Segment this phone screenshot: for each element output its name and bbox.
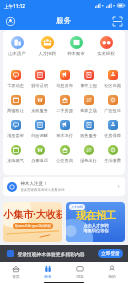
button[interactable]: 服务	[32, 262, 64, 281]
button[interactable]: 立即登录	[98, 249, 123, 258]
button[interactable]: 政务服务	[77, 120, 100, 145]
staticText: 登录恒晓神木体验更多精彩内容	[17, 251, 85, 257]
staticText: 政务服务	[80, 133, 97, 138]
button[interactable]: 水电燃气	[4, 145, 27, 170]
staticText: 事件上报	[80, 83, 97, 88]
staticText: 社区见闻	[104, 83, 121, 88]
button[interactable]: 永政服务	[28, 95, 51, 120]
button[interactable]: 清景委审	[4, 120, 27, 145]
staticText: 神木支付	[56, 133, 73, 138]
staticText: 永政服务	[31, 108, 48, 113]
staticText: 水电燃气	[7, 158, 24, 163]
button[interactable]: 神木支付	[53, 120, 76, 145]
button[interactable]: 办事电话	[28, 145, 51, 170]
button[interactable]: 首页	[0, 262, 32, 281]
button[interactable]: 绿色出行	[77, 145, 100, 170]
button[interactable]: 财信证明	[28, 70, 51, 95]
button[interactable]: 信息发布	[53, 70, 76, 95]
staticText: 信息发布	[56, 83, 73, 88]
button[interactable]: 事件上报	[77, 70, 100, 95]
staticText: 上午11:12	[4, 3, 25, 9]
staticText: 更多国家政策请进入查看详情	[20, 188, 65, 192]
button[interactable]: 山木房产	[4, 36, 30, 57]
button[interactable]: 人才招聘	[34, 36, 60, 57]
button[interactable]: 种木聚市	[63, 36, 89, 57]
staticText: 办事电话	[31, 158, 48, 163]
staticText: 换家之场	[80, 108, 97, 113]
button[interactable]: 生活缴费	[101, 145, 124, 170]
staticText: 人才招聘	[71, 205, 83, 209]
staticText: 住房保障	[104, 133, 121, 138]
button[interactable]: 换家之场	[77, 95, 100, 120]
staticText: 立即登录	[101, 251, 120, 257]
staticText: 点击人才招聘	[83, 223, 109, 228]
staticText: 服务	[56, 16, 71, 25]
button[interactable]: 广告投放	[101, 95, 124, 120]
button[interactable]: 社区见闻	[101, 70, 124, 95]
button[interactable]: 实名授权	[93, 36, 119, 57]
staticText: 小集市·大收获！	[3, 207, 62, 221]
staticText: 七置动态	[7, 83, 24, 88]
button[interactable]: 小集市·大收获！	[3, 202, 62, 242]
staticText: 服务	[44, 274, 52, 279]
staticText: 神木人注意！	[20, 181, 48, 187]
button[interactable]: 人才招聘	[66, 202, 125, 242]
staticText: 公交查询	[56, 158, 73, 163]
button[interactable]: Profile	[4, 15, 16, 27]
staticText: 绿色出行	[80, 158, 97, 163]
staticText: 二手房源	[56, 108, 73, 113]
button[interactable]: 七置动态	[4, 70, 27, 95]
staticText: 现在招工	[76, 209, 116, 222]
button[interactable]: 公交查询	[53, 145, 76, 170]
button[interactable]: Scan QR code	[111, 15, 123, 27]
staticText: 清景委审	[7, 133, 24, 138]
staticText: 商铺租让	[7, 108, 24, 113]
staticText: 生活缴费	[104, 158, 121, 163]
button[interactable]: 我的	[96, 262, 128, 281]
staticText: 我的	[108, 274, 116, 279]
staticText: 吃喝玩乐购·遇见花式精彩	[15, 224, 51, 228]
staticText: 首页	[12, 274, 20, 279]
button[interactable]: 纠纷调解	[28, 120, 51, 145]
button[interactable]: 商铺租让	[4, 95, 27, 120]
staticText: 消息	[76, 274, 84, 279]
staticText: 广告投放	[104, 108, 121, 113]
button[interactable]: 消息	[64, 262, 96, 281]
staticText: 财信证明	[31, 83, 48, 88]
staticText: 人才招聘	[38, 51, 56, 57]
button[interactable]: 二手房源	[53, 95, 76, 120]
staticText: 种木聚市	[67, 51, 85, 57]
button[interactable]: 神木人注意！	[3, 177, 125, 196]
button[interactable]: 住房保障	[101, 120, 124, 145]
staticText: 纠纷调解	[31, 133, 48, 138]
staticText: 山木房产	[8, 51, 26, 57]
staticText: 海量职位等你	[83, 228, 109, 233]
staticText: 实名授权	[97, 51, 115, 57]
